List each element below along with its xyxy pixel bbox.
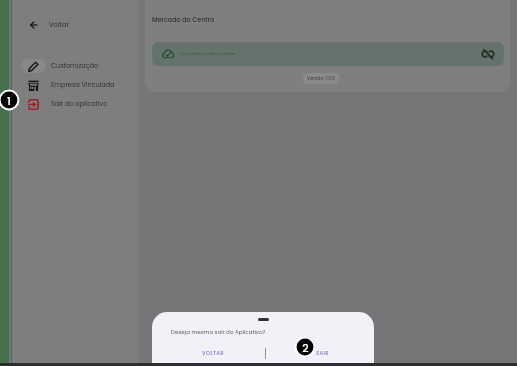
staticText: SAIR	[316, 349, 329, 356]
staticText: Customização	[51, 61, 99, 70]
staticText: Vinculado ao Navi Vendas	[181, 51, 235, 57]
button[interactable]: Desvincular	[481, 47, 495, 61]
staticText: VOLTAR	[202, 349, 225, 356]
staticText: Versão: 1.0.0	[307, 75, 336, 82]
button[interactable]: Empresa Vinculada	[12, 75, 138, 94]
button[interactable]: Voltar	[12, 13, 138, 37]
button[interactable]: SAIR	[266, 341, 374, 365]
staticText: 1	[7, 93, 11, 108]
staticText: Sair do aplicativo	[51, 99, 108, 108]
staticText: Empresa Vinculada	[51, 80, 115, 89]
button[interactable]: VOLTAR	[152, 341, 265, 365]
staticText: Voltar	[49, 20, 70, 30]
staticText: 2	[302, 340, 309, 355]
button[interactable]: Sair do aplicativo	[12, 94, 138, 113]
button[interactable]: Customização	[12, 56, 138, 75]
staticText: Mercado do Centro	[152, 15, 215, 24]
staticText: Deseja mesmo sair do Aplicativo?	[171, 328, 266, 336]
button[interactable]: Vinculado ao Navi Vendas	[152, 42, 504, 66]
